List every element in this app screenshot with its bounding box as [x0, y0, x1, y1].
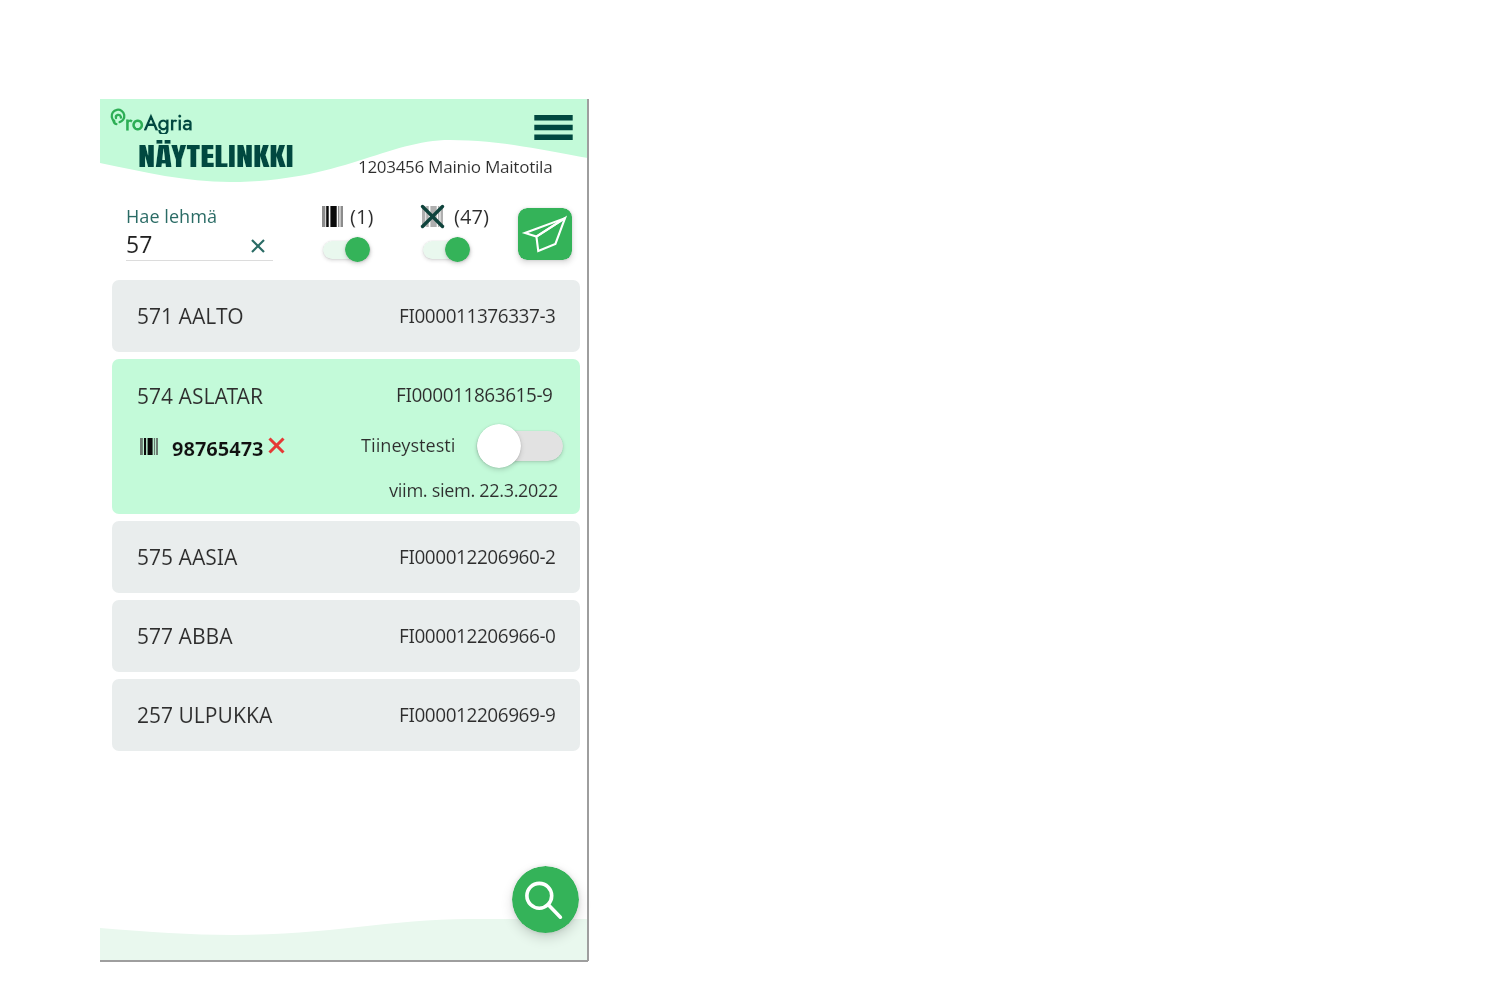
staticText: 574 ASLATAR — [137, 382, 264, 411]
button[interactable]: Search — [512, 866, 579, 933]
button[interactable]: 257 ULPUKKA — [112, 679, 580, 751]
staticText: 571 AALTO — [137, 302, 244, 331]
staticText: ro — [125, 108, 144, 134]
staticText: viim. siem. 22.3.2022 — [389, 478, 558, 503]
button[interactable]: Send — [518, 208, 572, 260]
staticText: FI000012206960-2 — [399, 544, 556, 570]
button[interactable]: Toggle — [323, 237, 370, 262]
staticText: 1203456 Mainio Maitotila — [358, 155, 553, 178]
staticText: 575 AASIA — [137, 543, 238, 572]
button[interactable]: 574 ASLATAR — [112, 359, 580, 514]
button[interactable]: Clear — [245, 233, 271, 259]
staticText: 98765473 — [172, 435, 264, 462]
staticText: 257 ULPUKKA — [137, 701, 273, 730]
staticText: Tiineystesti — [361, 433, 456, 458]
staticText: 577 ABBA — [137, 622, 233, 651]
button[interactable]: 575 AASIA — [112, 521, 580, 593]
button[interactable]: Toggle — [423, 237, 470, 262]
staticText: FI000012206966-0 — [399, 623, 556, 649]
staticText: FI000012206969-9 — [399, 702, 556, 728]
button[interactable]: 577 ABBA — [112, 600, 580, 672]
staticText: NÄYTELINKKI — [138, 138, 294, 176]
staticText: FI000011376337-3 — [399, 303, 556, 329]
button[interactable]: Toggle — [477, 424, 563, 468]
staticText: (1) — [350, 203, 374, 230]
button[interactable]: Menu — [525, 102, 581, 152]
staticText: 57 — [126, 228, 153, 259]
button[interactable]: 571 AALTO — [112, 280, 580, 352]
staticText: Hae lehmä — [126, 204, 218, 229]
staticText: FI000011863615-9 — [396, 382, 553, 408]
staticText: (47) — [454, 203, 489, 230]
staticText: Agria — [144, 108, 193, 134]
